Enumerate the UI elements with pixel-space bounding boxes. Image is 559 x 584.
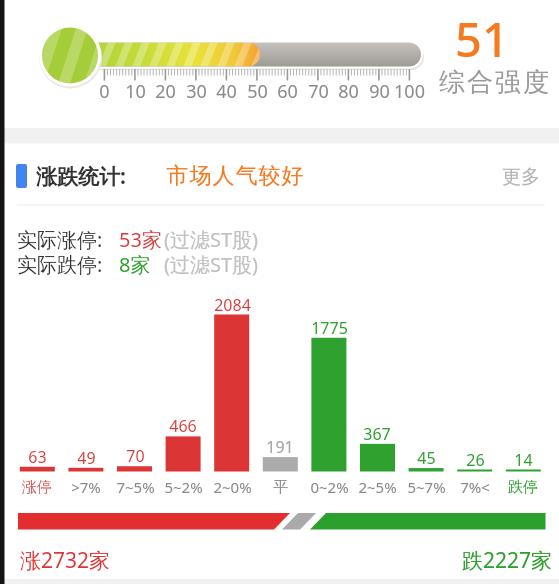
staticText: 53家	[119, 226, 162, 253]
staticText: 191	[266, 436, 294, 458]
staticText: 综合强度	[438, 66, 550, 99]
staticText: 0	[99, 79, 110, 104]
staticText: 2084	[214, 294, 251, 316]
staticText: 0~2%	[310, 477, 349, 497]
staticText: (过滤ST股)	[164, 251, 259, 278]
staticText: 70	[308, 79, 329, 104]
staticText: 90	[369, 79, 390, 104]
staticText: 7~5%	[116, 477, 155, 497]
staticText: 7%<	[460, 477, 490, 497]
staticText: 367	[363, 423, 391, 445]
staticText: 20	[155, 79, 176, 104]
staticText: 2~5%	[358, 477, 397, 497]
staticText: 45	[417, 447, 436, 469]
button[interactable]: 更多	[495, 164, 547, 190]
staticText: 10	[125, 79, 146, 104]
staticText: 100	[394, 79, 425, 104]
staticText: 实际跌停:	[17, 251, 103, 278]
staticText: 49	[77, 447, 96, 469]
staticText: 63	[28, 446, 47, 468]
staticText: (过滤ST股)	[164, 226, 259, 253]
staticText: 466	[169, 415, 197, 437]
staticText: 平	[273, 478, 288, 497]
staticText: 30	[186, 79, 207, 104]
staticText: 8家	[119, 251, 151, 278]
staticText: 涨跌统计:	[36, 162, 126, 191]
staticText: 涨停	[22, 478, 52, 497]
staticText: 市场人气较好	[166, 162, 304, 190]
staticText: 1775	[311, 317, 348, 339]
staticText: 实际涨停:	[17, 226, 103, 253]
staticText: 涨2732家	[20, 546, 111, 575]
staticText: 更多	[502, 165, 540, 189]
staticText: >7%	[71, 477, 101, 497]
staticText: 80	[338, 79, 359, 104]
staticText: 70	[126, 445, 145, 467]
staticText: 50	[247, 79, 268, 104]
staticText: 60	[277, 79, 298, 104]
staticText: 2~0%	[213, 477, 252, 497]
staticText: 5~7%	[407, 477, 446, 497]
staticText: 5~2%	[164, 477, 203, 497]
staticText: 跌2227家	[462, 546, 553, 575]
staticText: 51	[455, 7, 509, 71]
staticText: 40	[216, 79, 237, 104]
staticText: 14	[514, 449, 533, 471]
staticText: 跌停	[508, 478, 538, 497]
staticText: 26	[466, 449, 485, 471]
